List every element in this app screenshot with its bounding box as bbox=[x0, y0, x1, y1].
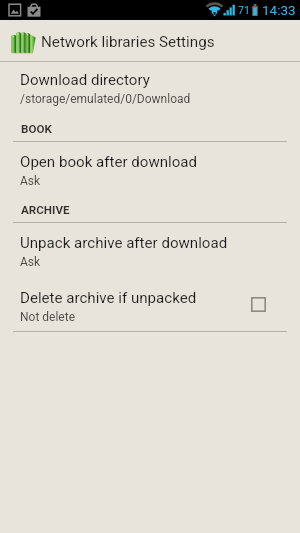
button[interactable]: Network libraries Settings bbox=[0, 20, 222, 61]
button[interactable]: Download directory bbox=[0, 61, 300, 116]
staticText: Download directory bbox=[20, 71, 150, 89]
staticText: BOOK bbox=[21, 122, 52, 136]
staticText: 14:33 bbox=[262, 2, 296, 18]
staticText: Unpack archive after download bbox=[20, 234, 228, 252]
button[interactable]: Delete archive if unpacked checkbox bbox=[251, 297, 266, 312]
staticText: Ask bbox=[20, 255, 41, 269]
button[interactable]: Unpack archive after download bbox=[0, 224, 300, 279]
button[interactable]: Delete archive if unpacked bbox=[0, 279, 300, 334]
staticText: Network libraries Settings bbox=[41, 33, 215, 51]
button[interactable]: Open book after download bbox=[0, 143, 300, 198]
staticText: 71 bbox=[238, 4, 250, 16]
staticText: Ask bbox=[20, 174, 41, 188]
staticText: Delete archive if unpacked bbox=[20, 289, 197, 307]
staticText: ARCHIVE bbox=[21, 203, 70, 217]
staticText: Open book after download bbox=[20, 153, 198, 171]
staticText: Not delete bbox=[20, 310, 76, 324]
staticText: /storage/emulated/0/Download bbox=[20, 92, 191, 106]
